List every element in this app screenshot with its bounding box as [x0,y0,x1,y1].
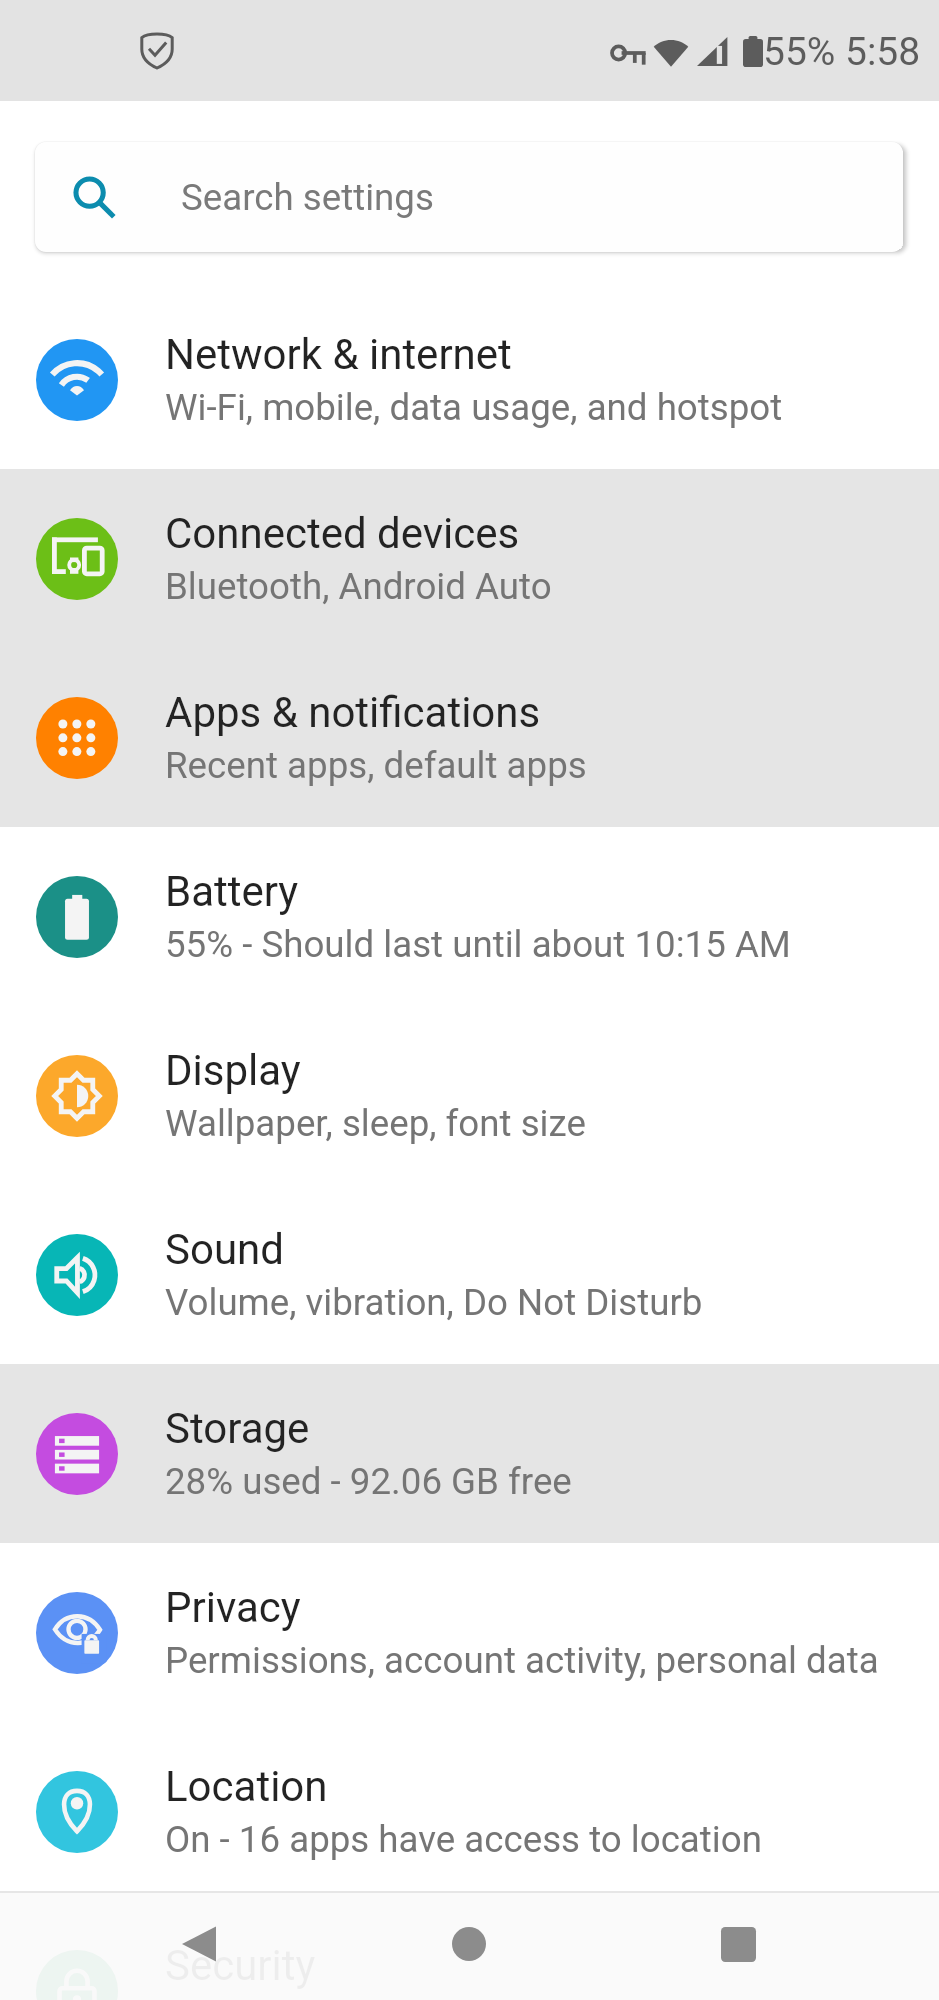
staticText: Wi-Fi, mobile, data usage, and hotspot [165,386,783,429]
button[interactable]: Sound [0,1185,939,1364]
button[interactable]: Privacy [0,1543,939,1722]
button[interactable]: Back [144,1891,254,1999]
staticText: Permissions, account activity, personal … [165,1639,879,1682]
button[interactable]: Recent apps [683,1891,793,1999]
staticText: Security [165,1941,316,1990]
staticText: Search settings [181,176,434,219]
staticText: 28% used - 92.06 GB free [165,1460,572,1503]
staticText: On - 16 apps have access to location [165,1818,762,1861]
button[interactable]: Search settings [35,142,903,252]
staticText: Wallpaper, sleep, font size [165,1102,586,1145]
staticText: Network & internet [165,330,512,379]
staticText: 5:58 [845,29,921,75]
staticText: Connected devices [165,509,520,558]
staticText: Volume, vibration, Do Not Disturb [165,1281,703,1324]
staticText: 55% - Should last until about 10:15 AM [165,923,791,966]
button[interactable]: Battery [0,827,939,1006]
staticText: Recent apps, default apps [165,744,587,787]
button[interactable]: Connected devices [0,469,939,648]
staticText: Sound [165,1225,284,1274]
staticText: 55% [763,29,836,75]
button[interactable]: Home [414,1891,524,1999]
button[interactable]: Display [0,1006,939,1185]
button[interactable]: Apps & notifications [0,648,939,827]
staticText: Storage [165,1404,310,1453]
button[interactable]: Storage [0,1364,939,1543]
staticText: Battery [165,867,299,916]
staticText: Location [165,1762,328,1811]
button[interactable]: Location [0,1722,939,1901]
staticText: Apps & notifications [165,688,541,737]
button[interactable]: Network & internet [0,290,939,469]
button[interactable]: Security [0,1901,939,2000]
staticText: Privacy [165,1583,301,1632]
staticText: Bluetooth, Android Auto [165,565,552,608]
staticText: Display [165,1046,301,1095]
